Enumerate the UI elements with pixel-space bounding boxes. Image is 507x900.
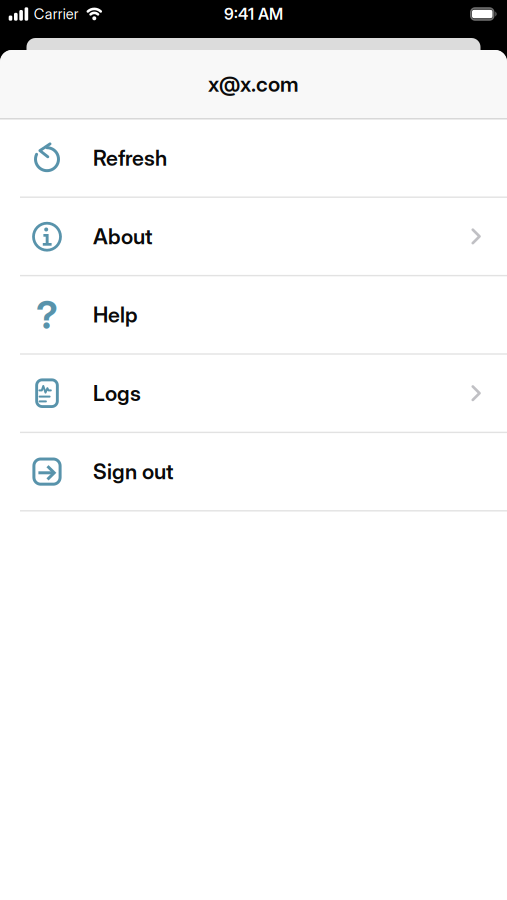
button[interactable]: Sign out	[0, 433, 507, 510]
button[interactable]: About	[0, 198, 507, 275]
staticText: Sign out	[93, 459, 173, 484]
staticText: ?	[36, 291, 58, 338]
staticText: Refresh	[93, 145, 167, 171]
button[interactable]: ?	[0, 276, 507, 353]
staticText: Carrier	[34, 5, 79, 23]
staticText: 9:41 AM	[224, 4, 283, 24]
staticText: Help	[93, 302, 138, 328]
button[interactable]: Logs	[0, 355, 507, 432]
staticText: About	[93, 223, 152, 249]
staticText: Logs	[93, 380, 141, 406]
staticText: x@x.com	[208, 71, 299, 97]
button[interactable]: Refresh	[0, 119, 507, 196]
